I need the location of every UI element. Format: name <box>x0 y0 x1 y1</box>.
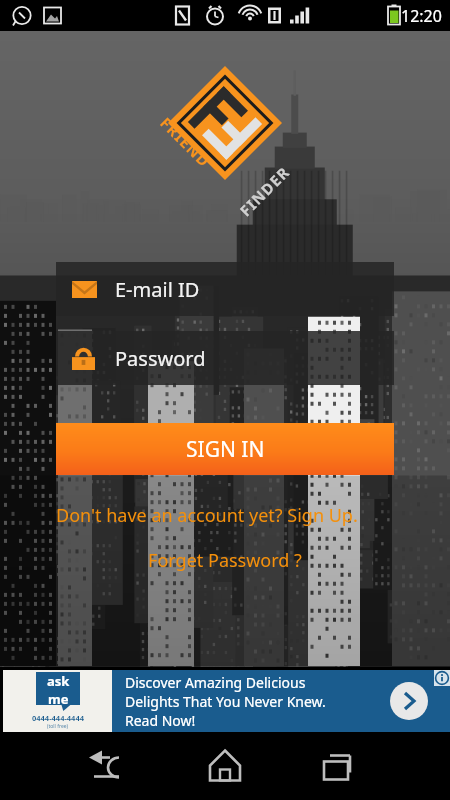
staticText: 12:20 <box>401 5 442 27</box>
staticText: Forget Password ? <box>148 548 302 573</box>
button[interactable]: Home <box>150 733 300 800</box>
staticText: E-mail ID <box>115 276 200 303</box>
button[interactable]: Don't have an account yet? Sign Up. <box>56 503 394 528</box>
staticText: FRIEND <box>156 113 215 171</box>
button[interactable]: Password <box>56 331 394 385</box>
staticText: ask <box>47 672 70 690</box>
button[interactable]: Advertisement <box>0 667 450 733</box>
staticText: SIGN IN <box>186 435 265 464</box>
button[interactable]: Forget Password ? <box>56 548 394 573</box>
staticText: Discover Amazing Delicious <box>125 673 306 692</box>
staticText: Password <box>115 345 206 372</box>
button[interactable]: E-mail ID <box>56 262 394 316</box>
button[interactable]: SIGN IN <box>56 423 394 475</box>
button[interactable]: Recent apps <box>300 733 450 800</box>
staticText: Read Now! <box>125 711 196 730</box>
staticText: 0444-444-4444 <box>32 713 84 723</box>
staticText: me <box>48 690 69 705</box>
staticText: Delights That You Never Knew. <box>125 692 326 711</box>
button[interactable]: Back <box>0 733 150 800</box>
staticText: (toll free) <box>47 723 69 730</box>
staticText: Don't have an account yet? Sign Up. <box>56 503 358 528</box>
staticText: FINDER <box>235 162 294 220</box>
